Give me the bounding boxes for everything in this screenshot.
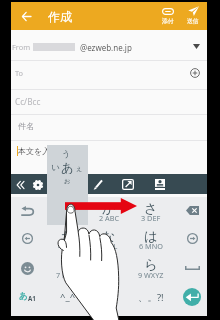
staticText: 7 PQRS [56, 270, 81, 280]
staticText: 、。?! [138, 291, 164, 304]
staticText: た [61, 228, 75, 244]
staticText: A1 [28, 294, 36, 302]
staticText: 作成 [48, 9, 72, 24]
button[interactable]: さ [131, 199, 171, 227]
button[interactable]: Choose sender address [187, 37, 205, 55]
staticText: 1 ☆♪→ [56, 213, 80, 223]
staticText: ぇ [75, 164, 83, 173]
staticText: @ezweb.ne.jp [80, 42, 132, 53]
button[interactable]: 作成 [45, 6, 75, 26]
button[interactable]: ら [131, 255, 171, 283]
button[interactable]: Add recipient [186, 64, 204, 82]
staticText: い [51, 162, 60, 173]
button[interactable]: Back [16, 6, 36, 26]
staticText: 0 ～ [102, 298, 116, 308]
button[interactable]: な [89, 227, 129, 255]
button[interactable]: Settings [29, 175, 47, 194]
staticText: 送信 [187, 17, 199, 24]
staticText: か [102, 200, 116, 216]
staticText: ら [144, 256, 158, 272]
staticText: 添付 [162, 17, 174, 24]
button[interactable]: た [48, 227, 88, 255]
button[interactable]: Expand keyboard [119, 175, 137, 194]
staticText: 3 DEF [141, 213, 161, 223]
button[interactable]: か [89, 199, 129, 227]
button[interactable]: Switch input mode [7, 282, 47, 310]
staticText: さ [144, 200, 158, 216]
button[interactable]: Handwriting [89, 175, 107, 194]
staticText: 6 MNO [139, 241, 163, 251]
button[interactable] [11, 89, 207, 114]
staticText: 本文を入力 [18, 146, 59, 156]
staticText: あ [19, 291, 28, 302]
button[interactable]: は [131, 227, 171, 255]
button[interactable]: Space [172, 254, 212, 282]
staticText: う [62, 149, 71, 160]
button[interactable]: や [89, 255, 129, 283]
button[interactable]: Undo [7, 197, 47, 225]
button[interactable]: Stamp [151, 175, 169, 194]
staticText: From [12, 42, 31, 52]
button[interactable]: Cursor left [7, 225, 47, 253]
button[interactable]: Kaomoji [48, 282, 88, 310]
staticText: ^_^ [60, 290, 76, 303]
button[interactable]: Backspace [172, 197, 212, 225]
staticText: 9 WXYZ [138, 270, 164, 280]
button[interactable]: Emoji [7, 254, 47, 282]
staticText: 件名 [18, 121, 34, 131]
staticText: 4 GHI [58, 241, 78, 251]
staticText: To [15, 68, 24, 78]
button[interactable]: あ [48, 199, 88, 227]
staticText: 8 TUV [99, 270, 119, 280]
staticText: Cc/Bcc [15, 96, 41, 107]
staticText: 2 ABC [99, 213, 120, 223]
staticText: ぉ [63, 176, 71, 185]
button[interactable]: Punctuation [131, 282, 171, 310]
button[interactable] [11, 30, 207, 60]
button[interactable]: Cursor right [172, 225, 212, 253]
staticText: 5 JKL [101, 241, 118, 251]
button[interactable]: ま [48, 255, 88, 283]
staticText: あ [61, 200, 75, 216]
staticText: あ [61, 160, 74, 174]
staticText: や [102, 256, 116, 272]
button[interactable] [11, 140, 207, 174]
staticText: な [102, 228, 116, 244]
button[interactable]: Collapse toolbar [11, 175, 29, 194]
button[interactable]: Send [182, 5, 204, 29]
button[interactable] [11, 114, 207, 140]
button[interactable]: Attach [157, 5, 179, 29]
button[interactable]: Enter [172, 282, 212, 310]
staticText: ま [61, 256, 75, 272]
staticText: は [144, 228, 158, 244]
button[interactable]: wa [89, 282, 129, 310]
button[interactable] [11, 60, 207, 89]
